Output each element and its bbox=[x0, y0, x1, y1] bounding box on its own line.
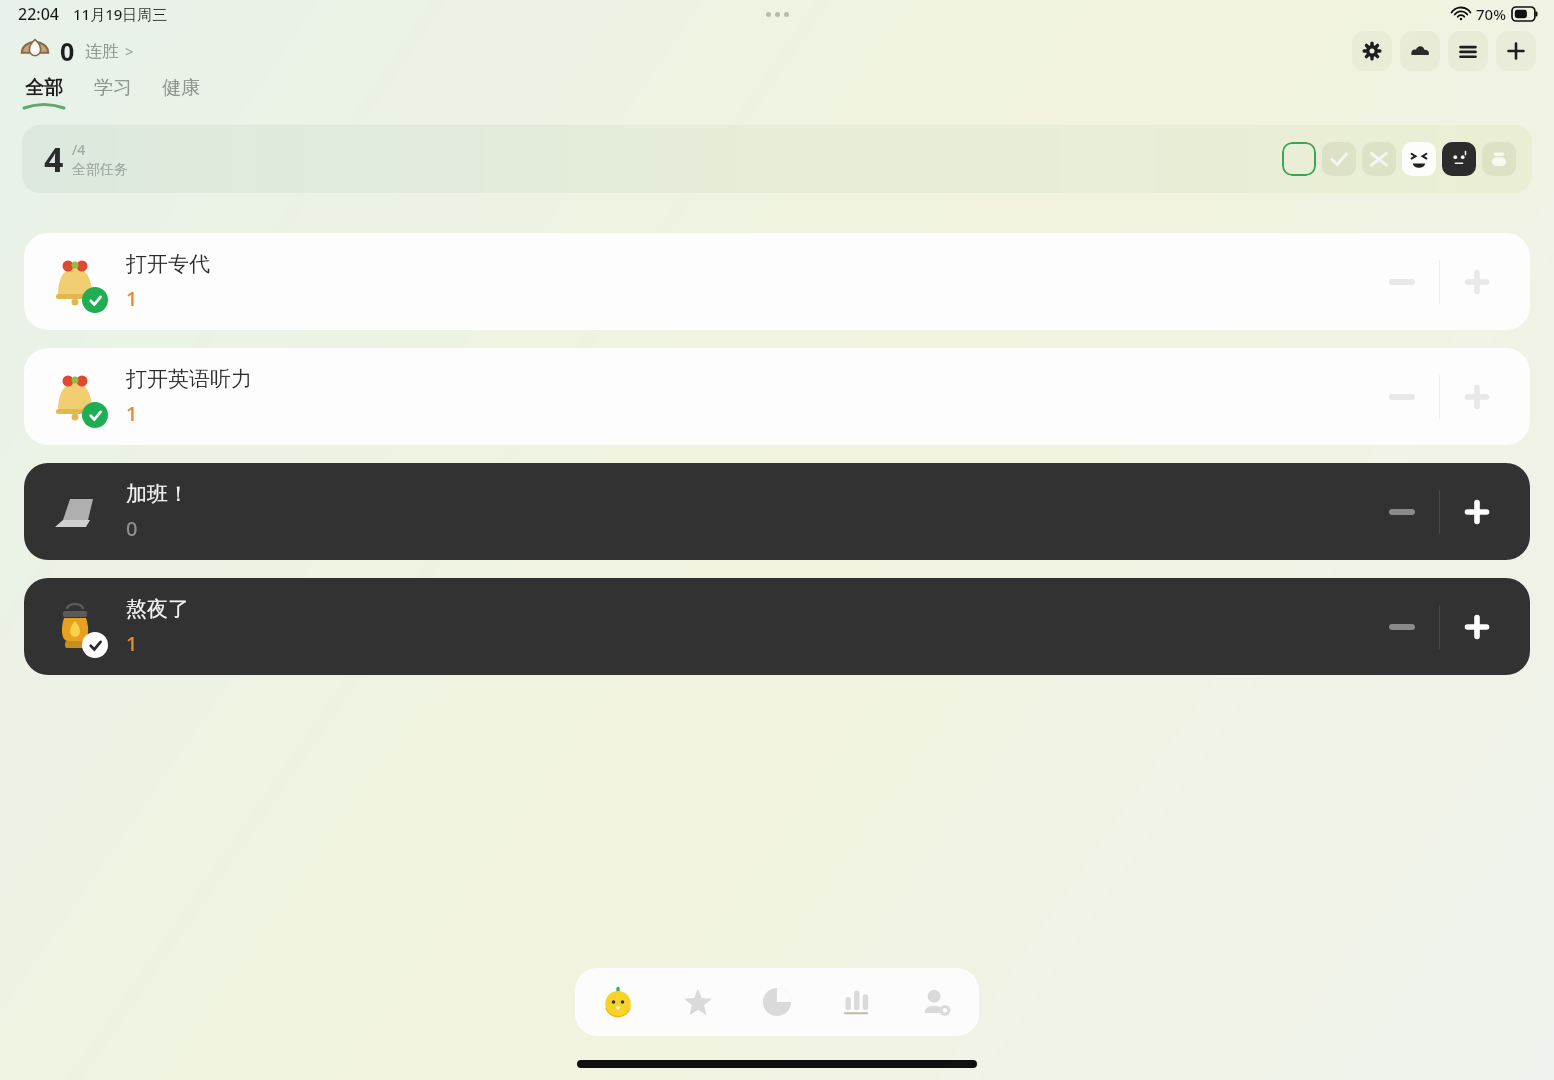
staticText: 0 bbox=[60, 34, 75, 68]
button[interactable]: Decrease bbox=[1365, 463, 1439, 560]
button[interactable]: 打开英语听力 bbox=[24, 348, 1530, 445]
button[interactable]: Timer bbox=[741, 968, 813, 1036]
staticText: /4 bbox=[72, 140, 86, 159]
button[interactable]: Neutral bbox=[1442, 142, 1476, 176]
button[interactable]: Settings bbox=[1352, 31, 1392, 71]
button[interactable]: Home bbox=[582, 968, 654, 1036]
staticText: 0 bbox=[126, 515, 138, 542]
button[interactable]: 0 bbox=[16, 32, 138, 70]
button[interactable]: 健康 bbox=[156, 74, 206, 111]
button[interactable]: 4 bbox=[22, 125, 1532, 193]
staticText: 加班！ bbox=[126, 481, 189, 507]
button[interactable]: 熬夜了 bbox=[24, 578, 1530, 675]
button[interactable]: Stats bbox=[820, 968, 892, 1036]
button[interactable]: Decrease bbox=[1365, 578, 1439, 675]
staticText: 连胜 bbox=[85, 41, 119, 62]
button[interactable]: Increase bbox=[1440, 463, 1514, 560]
staticText: 打开专代 bbox=[126, 251, 210, 277]
button[interactable]: 打开专代 bbox=[24, 233, 1530, 330]
staticText: 70% bbox=[1476, 4, 1506, 24]
button[interactable]: Add bbox=[1496, 31, 1536, 71]
staticText: 11月19日周三 bbox=[73, 4, 168, 24]
staticText: 全部 bbox=[25, 76, 63, 100]
button[interactable]: Archive bbox=[1482, 142, 1516, 176]
staticText: 1 bbox=[126, 630, 138, 657]
button[interactable]: Increase bbox=[1440, 233, 1514, 330]
staticText: 1 bbox=[126, 400, 138, 427]
staticText: 健康 bbox=[162, 76, 200, 100]
button[interactable]: 全部 bbox=[18, 74, 70, 111]
button[interactable]: 学习 bbox=[88, 74, 138, 111]
button[interactable]: Favorites bbox=[662, 968, 734, 1036]
button[interactable]: Increase bbox=[1440, 348, 1514, 445]
staticText: 全部任务 bbox=[72, 161, 128, 179]
button[interactable]: List bbox=[1448, 31, 1488, 71]
button[interactable]: Increase bbox=[1440, 578, 1514, 675]
staticText: 4 bbox=[44, 136, 64, 182]
button[interactable]: Skip bbox=[1362, 142, 1396, 176]
staticText: 熬夜了 bbox=[126, 596, 189, 622]
button[interactable]: Sync bbox=[1400, 31, 1440, 71]
staticText: 1 bbox=[126, 285, 138, 312]
button[interactable]: All bbox=[1282, 142, 1316, 176]
button[interactable]: 加班！ bbox=[24, 463, 1530, 560]
button[interactable]: Done bbox=[1322, 142, 1356, 176]
button[interactable]: Happy bbox=[1402, 142, 1436, 176]
button[interactable]: Profile bbox=[900, 968, 972, 1036]
staticText: 打开英语听力 bbox=[126, 366, 252, 392]
staticText: 学习 bbox=[94, 76, 132, 100]
staticText: 22:04 bbox=[18, 3, 59, 25]
staticText: > bbox=[125, 41, 134, 61]
